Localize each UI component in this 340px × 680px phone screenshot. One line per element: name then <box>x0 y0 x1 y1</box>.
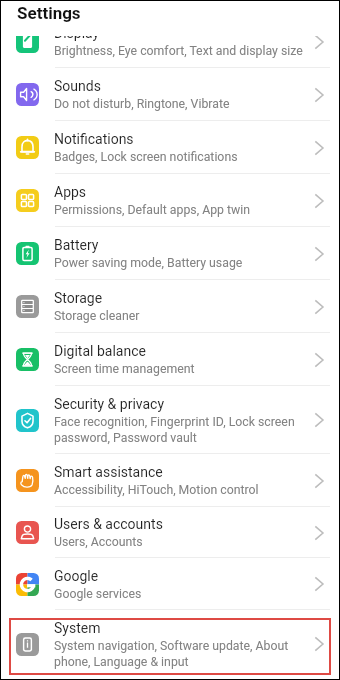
staticText: Google <box>54 568 99 584</box>
staticText: Badges, Lock screen notifications <box>54 150 238 164</box>
button[interactable]: Storage <box>1 280 339 333</box>
staticText: Sounds <box>54 78 101 94</box>
button[interactable]: Security & privacy <box>1 386 339 454</box>
button[interactable]: Google <box>1 558 339 610</box>
staticText: Users, Accounts <box>54 535 143 549</box>
staticText: Settings <box>17 3 81 23</box>
button[interactable]: Digital balance <box>1 333 339 386</box>
staticText: Storage <box>54 290 103 306</box>
staticText: Storage cleaner <box>54 309 140 323</box>
staticText: System <box>54 620 101 636</box>
staticText: Brightness, Eye comfort, Text and displa… <box>54 44 303 58</box>
staticText: Notifications <box>54 131 134 147</box>
staticText: Do not disturb, Ringtone, Vibrate <box>54 97 230 111</box>
staticText: Google services <box>54 587 142 601</box>
staticText: Permissions, Default apps, App twin <box>54 203 251 217</box>
button[interactable]: Sounds <box>1 68 339 121</box>
button[interactable]: Battery <box>1 227 339 280</box>
button[interactable]: Apps <box>1 174 339 227</box>
staticText: Accessibility, HiTouch, Motion control <box>54 483 259 497</box>
staticText: Digital balance <box>54 343 146 359</box>
staticText: Users & accounts <box>54 516 163 532</box>
staticText: Face recognition, Fingerprint ID, Lock s… <box>54 415 310 445</box>
button[interactable]: Notifications <box>1 121 339 174</box>
staticText: Security & privacy <box>54 396 165 412</box>
button[interactable]: Users & accounts <box>1 507 339 558</box>
staticText: System navigation, Software update, Abou… <box>54 639 310 669</box>
staticText: Power saving mode, Battery usage <box>54 256 243 270</box>
staticText: Smart assistance <box>54 464 163 480</box>
button[interactable]: System <box>1 610 339 678</box>
button[interactable]: Smart assistance <box>1 454 339 507</box>
button[interactable]: Display <box>1 15 339 68</box>
staticText: Apps <box>54 184 87 200</box>
staticText: Display <box>54 25 100 41</box>
staticText: Battery <box>54 237 99 253</box>
staticText: Screen time management <box>54 362 195 376</box>
